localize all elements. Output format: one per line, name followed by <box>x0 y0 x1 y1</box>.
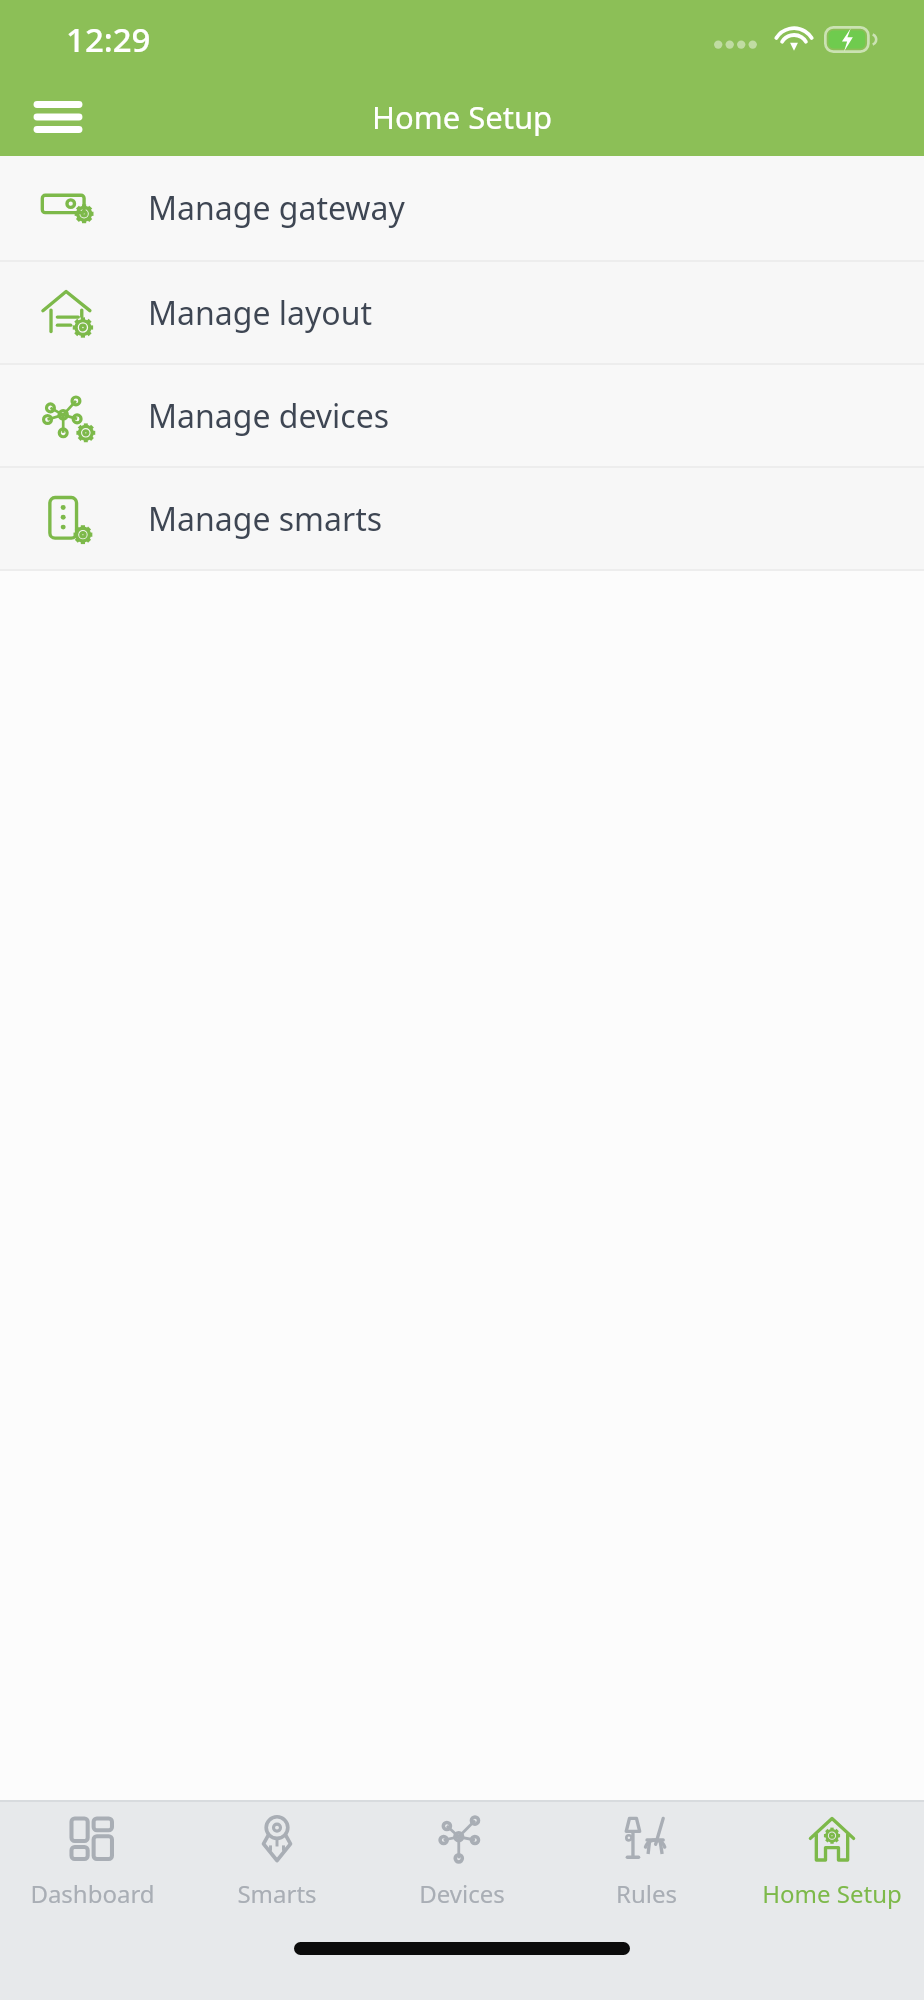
button[interactable]: Manage devices <box>0 365 924 466</box>
staticText: Manage gateway <box>148 186 405 230</box>
button[interactable]: Dashboard <box>0 1802 184 1920</box>
staticText: Manage layout <box>148 291 372 335</box>
button[interactable]: Manage layout <box>0 262 924 363</box>
staticText: Manage devices <box>148 394 390 438</box>
button[interactable]: Manage smarts <box>0 468 924 569</box>
staticText: Rules <box>616 1877 677 1910</box>
staticText: Home Setup <box>762 1877 902 1910</box>
button[interactable]: Menu <box>22 81 94 153</box>
button[interactable]: Home Setup <box>739 1802 924 1920</box>
staticText: Smarts <box>237 1877 317 1910</box>
staticText: Dashboard <box>30 1877 155 1910</box>
button[interactable]: Devices <box>369 1802 554 1920</box>
staticText: Home Setup <box>372 96 553 138</box>
staticText: Devices <box>419 1877 505 1910</box>
button[interactable]: Smarts <box>184 1802 369 1920</box>
staticText: Manage smarts <box>148 497 383 541</box>
button[interactable]: Rules <box>554 1802 739 1920</box>
button[interactable]: Manage gateway <box>0 156 924 260</box>
staticText: 12:29 <box>66 17 151 62</box>
